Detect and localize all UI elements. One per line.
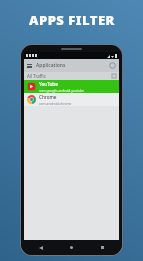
staticText: Applications [36,62,66,69]
staticText: APPS FILTER [29,11,115,29]
staticText: Chrome [39,94,57,100]
button[interactable]: YouTube [24,80,119,93]
button[interactable]: Open navigation menu [24,59,119,72]
button[interactable]: Refresh [109,62,116,69]
button[interactable]: Home [67,243,76,252]
staticText: com.android.chrome [39,101,72,105]
staticText: com.google.android.youtube [39,88,84,92]
button[interactable]: Recent apps [98,243,107,252]
button[interactable]: Chrome [24,93,119,106]
button[interactable]: Open navigation menu [27,64,32,68]
button[interactable]: All Traffic [24,72,119,80]
staticText: YouTube [39,81,58,87]
staticText: All Traffic [27,73,46,79]
button[interactable]: Back [36,243,45,252]
